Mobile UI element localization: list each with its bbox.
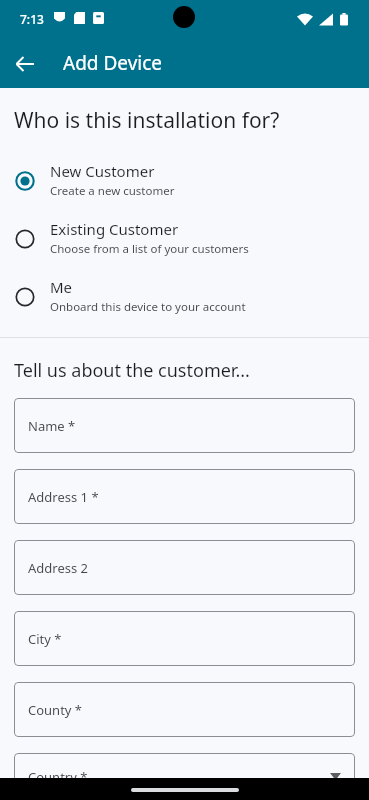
staticText: Create a new customer: [50, 183, 175, 199]
staticText: Choose from a list of your customers: [50, 241, 249, 257]
button[interactable]: Existing Customer: [0, 210, 369, 268]
staticText: Me: [50, 277, 73, 297]
button[interactable]: Back: [7, 45, 45, 83]
button[interactable]: New Customer: [0, 152, 369, 210]
staticText: Address 1 *: [28, 488, 99, 506]
staticText: Onboard this device to your account: [50, 299, 246, 315]
staticText: Add Device: [63, 50, 163, 76]
staticText: Tell us about the customer...: [14, 358, 250, 383]
button[interactable]: City *: [14, 611, 355, 666]
staticText: Who is this installation for?: [14, 106, 280, 135]
staticText: 7:13: [20, 11, 44, 27]
button[interactable]: Name *: [14, 398, 355, 453]
staticText: Address 2: [28, 559, 89, 577]
staticText: Existing Customer: [50, 219, 179, 239]
button[interactable]: Address 1 *: [14, 469, 355, 524]
button[interactable]: County *: [14, 682, 355, 737]
button[interactable]: Country *: [14, 753, 355, 800]
button[interactable]: Address 2: [14, 540, 355, 595]
button[interactable]: Me: [0, 268, 369, 326]
staticText: City *: [28, 630, 62, 648]
staticText: New Customer: [50, 161, 155, 181]
staticText: County *: [28, 701, 83, 719]
staticText: Country *: [28, 768, 88, 786]
staticText: Name *: [28, 417, 76, 435]
